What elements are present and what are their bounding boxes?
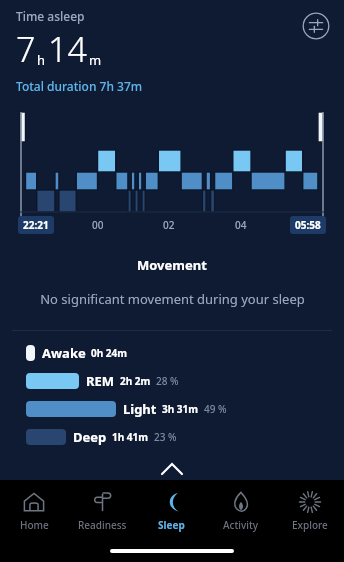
staticText: 7 — [16, 26, 36, 72]
staticText: Activity — [223, 518, 259, 532]
button[interactable]: Light — [0, 399, 344, 419]
staticText: m — [89, 51, 102, 69]
staticText: Time asleep — [16, 8, 85, 24]
staticText: Sleep — [158, 518, 185, 532]
staticText: 02 — [163, 218, 175, 232]
staticText: Movement — [137, 256, 207, 274]
button[interactable]: Explore — [275, 486, 344, 536]
button[interactable]: REM — [0, 371, 344, 391]
staticText: Light — [123, 400, 157, 418]
button[interactable]: Awake — [0, 343, 344, 363]
staticText: 3h 31m — [162, 402, 199, 416]
button[interactable]: Sleep — [137, 486, 206, 536]
staticText: Readiness — [78, 518, 127, 532]
button[interactable]: Home — [0, 486, 68, 536]
staticText: 22:21 — [23, 218, 49, 232]
button[interactable]: Activity — [206, 486, 275, 536]
staticText: 0h 24m — [91, 346, 128, 360]
staticText: Awake — [42, 344, 86, 362]
staticText: 28 % — [156, 374, 179, 388]
staticText: 23 % — [154, 430, 177, 444]
button[interactable]: Collapse details — [0, 457, 344, 480]
staticText: 04 — [235, 218, 247, 232]
staticText: 05:58 — [295, 218, 321, 232]
staticText: 49 % — [204, 402, 227, 416]
staticText: Explore — [292, 518, 328, 532]
staticText: 2h 2m — [120, 374, 151, 388]
button[interactable]: Readiness — [68, 486, 137, 536]
staticText: 14 — [48, 26, 87, 72]
staticText: Deep — [73, 428, 107, 446]
staticText: No significant movement during your slee… — [40, 290, 305, 308]
button[interactable]: Adjust sleep settings — [302, 12, 330, 40]
staticText: Total duration 7h 37m — [16, 78, 143, 94]
staticText: REM — [86, 372, 115, 390]
staticText: 1h 41m — [112, 430, 149, 444]
staticText: h — [37, 51, 46, 69]
button[interactable]: Deep — [0, 427, 344, 447]
staticText: 00 — [92, 218, 104, 232]
staticText: Home — [20, 518, 49, 532]
